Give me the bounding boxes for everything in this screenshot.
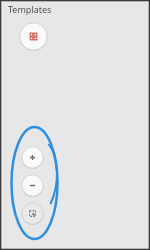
button[interactable]: Templates xyxy=(19,22,48,51)
button[interactable]: Zoom in xyxy=(21,146,44,169)
button[interactable]: Select area xyxy=(21,202,44,225)
staticText: Templates xyxy=(8,3,52,15)
button[interactable]: Zoom out xyxy=(21,174,44,197)
